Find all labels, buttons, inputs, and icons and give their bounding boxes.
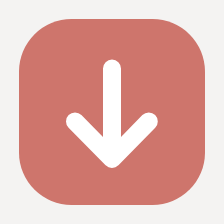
button[interactable]: Download <box>19 19 205 205</box>
